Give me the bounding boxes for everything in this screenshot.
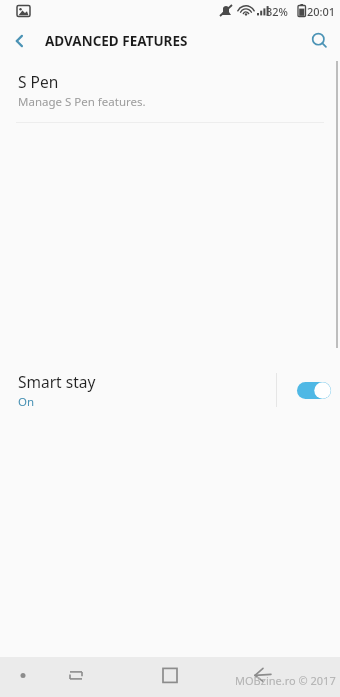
staticText: S Pen xyxy=(18,71,59,92)
button[interactable]: Back xyxy=(0,22,40,59)
button[interactable]: Back xyxy=(255,657,340,697)
staticText: MOBzine.ro © 2017 xyxy=(235,673,336,688)
button[interactable]: Menu xyxy=(0,657,85,697)
staticText: 32% xyxy=(266,4,288,19)
staticText: Smart stay xyxy=(18,371,96,392)
staticText: 20:01 xyxy=(307,4,336,19)
button[interactable]: S Pen xyxy=(0,59,340,122)
staticText: ADVANCED FEATURES xyxy=(45,32,188,50)
button[interactable]: Search xyxy=(298,22,340,59)
button[interactable]: Smart stay switch xyxy=(292,375,336,405)
button[interactable]: Home xyxy=(170,657,255,697)
button[interactable]: Smart stay xyxy=(0,123,340,657)
staticText: Manage S Pen features. xyxy=(18,94,146,110)
staticText: On xyxy=(18,394,35,410)
button[interactable]: Recents xyxy=(85,657,170,697)
